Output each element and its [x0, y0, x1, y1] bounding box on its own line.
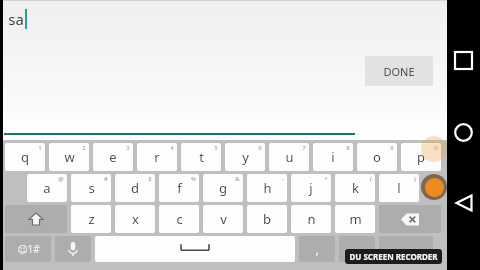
button[interactable]: b [247, 205, 287, 233]
button[interactable]: s [71, 174, 111, 202]
button[interactable]: m [335, 205, 375, 233]
staticText: l [397, 179, 401, 197]
staticText: 7 [302, 144, 306, 152]
staticText: d [131, 179, 139, 197]
button[interactable]: y [225, 143, 265, 171]
button[interactable]: f [159, 174, 199, 202]
button[interactable]: q [5, 143, 45, 171]
staticText: c [176, 210, 183, 228]
staticText: n [307, 210, 316, 228]
button[interactable]: Home [447, 116, 480, 149]
staticText: $ [148, 175, 152, 183]
button[interactable]: Space [95, 236, 295, 262]
staticText: x [132, 210, 139, 228]
staticText: ☺1# [17, 242, 40, 256]
staticText: t [199, 148, 204, 166]
button[interactable]: Enter [379, 236, 433, 262]
staticText: DU SCREEN RECORDER [349, 251, 438, 262]
button[interactable]: i [313, 143, 353, 171]
button[interactable]: z [71, 205, 111, 233]
button[interactable]: Comma [299, 236, 335, 262]
button[interactable]: o [357, 143, 397, 171]
staticText: @ [58, 175, 64, 183]
staticText: y [242, 148, 249, 166]
staticText: + [324, 175, 328, 183]
button[interactable]: c [159, 205, 199, 233]
staticText: # [104, 175, 108, 183]
staticText: w [64, 148, 75, 166]
staticText: - [282, 175, 284, 183]
staticText: 5 [214, 144, 218, 152]
button[interactable]: k [335, 174, 375, 202]
button[interactable]: l [379, 174, 419, 202]
button[interactable]: Backspace [379, 205, 441, 233]
button[interactable]: Symbols [5, 236, 51, 262]
staticText: g [219, 179, 227, 197]
button[interactable]: Recent apps [447, 44, 480, 77]
staticText: j [309, 179, 313, 197]
staticText: DONE [383, 64, 415, 79]
staticText: 3 [126, 144, 130, 152]
staticText: 9 [390, 144, 394, 152]
button[interactable]: v [203, 205, 243, 233]
staticText: h [263, 179, 272, 197]
staticText: f [177, 179, 182, 197]
staticText: p [417, 148, 425, 166]
button[interactable]: r [137, 143, 177, 171]
staticText: m [349, 210, 362, 228]
staticText: 0 [434, 144, 438, 152]
staticText: v [220, 210, 227, 228]
button[interactable]: a [27, 174, 67, 202]
staticText: ( [370, 175, 372, 183]
staticText: . [355, 241, 359, 257]
button[interactable]: t [181, 143, 221, 171]
staticText: 4 [170, 144, 174, 152]
button[interactable]: Shift [5, 205, 67, 233]
staticText: a [43, 179, 51, 197]
button[interactable]: Screen recorder [421, 174, 447, 200]
staticText: s [88, 179, 95, 197]
button[interactable]: h [247, 174, 287, 202]
staticText: u [285, 148, 294, 166]
staticText: q [21, 148, 29, 166]
staticText: r [154, 148, 160, 166]
staticText: & [235, 175, 240, 183]
button[interactable]: d [115, 174, 155, 202]
button[interactable]: sa [8, 9, 27, 29]
staticText: k [352, 179, 359, 197]
staticText: z [88, 210, 95, 228]
button[interactable]: DONE [365, 56, 433, 86]
staticText: b [263, 210, 271, 228]
button[interactable]: j [291, 174, 331, 202]
button[interactable]: e [93, 143, 133, 171]
staticText: 2 [82, 144, 86, 152]
staticText: 8 [346, 144, 350, 152]
button[interactable]: Period [339, 236, 375, 262]
button[interactable]: w [49, 143, 89, 171]
staticText: 6 [258, 144, 262, 152]
staticText: sa [8, 9, 24, 29]
staticText: , [315, 241, 319, 257]
staticText: % [191, 175, 196, 183]
button[interactable]: n [291, 205, 331, 233]
staticText: i [331, 148, 335, 166]
staticText: e [109, 148, 117, 166]
staticText: 1 [38, 144, 42, 152]
button[interactable]: Back [447, 186, 480, 219]
button[interactable]: Voice input [55, 236, 91, 262]
button[interactable]: x [115, 205, 155, 233]
button[interactable]: u [269, 143, 309, 171]
staticText: ) [414, 175, 416, 183]
button[interactable]: p [401, 143, 441, 171]
button[interactable]: g [203, 174, 243, 202]
staticText: o [373, 148, 381, 166]
